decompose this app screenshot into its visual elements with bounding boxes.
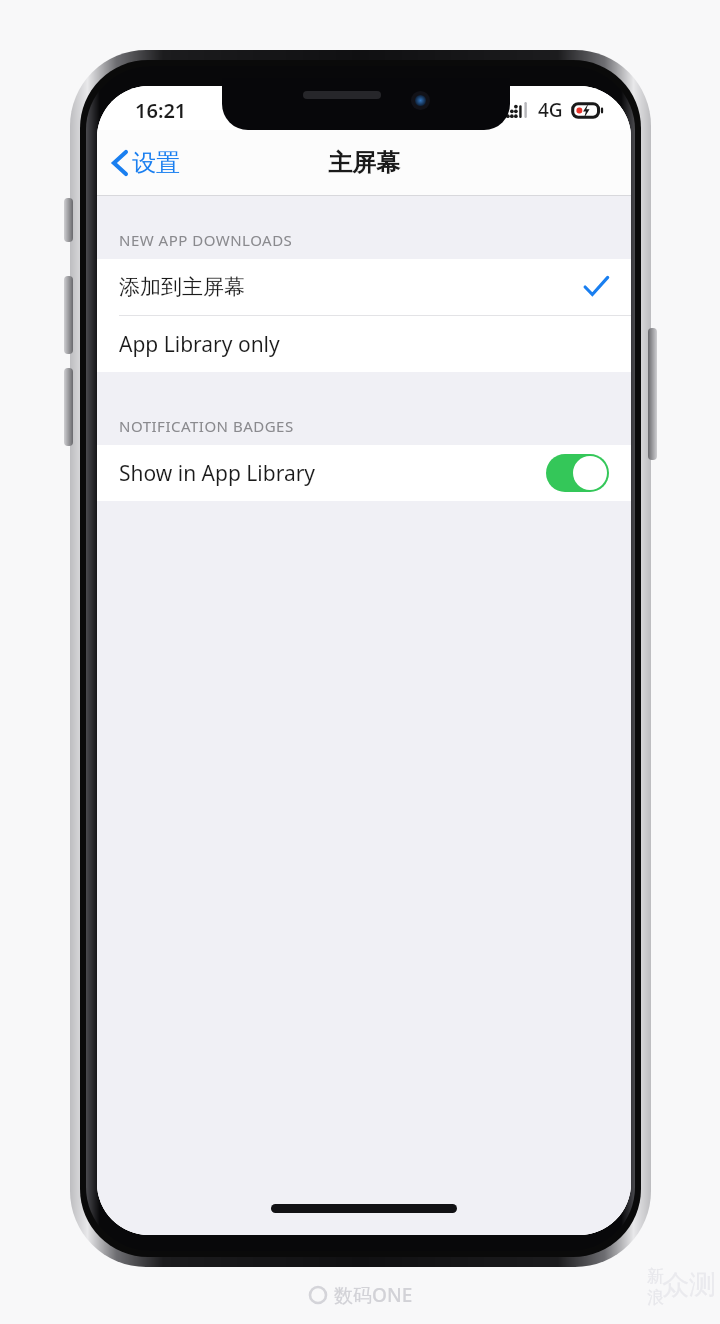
button[interactable]: Show in App Library [97, 445, 631, 501]
button[interactable]: 设置 [97, 138, 196, 188]
staticText: Show in App Library [119, 459, 316, 488]
staticText: NEW APP DOWNLOADS [119, 230, 293, 250]
staticText: 主屏幕 [328, 148, 400, 178]
staticText: 数码ONE [334, 1282, 413, 1308]
staticText: NOTIFICATION BADGES [119, 416, 294, 436]
staticText: 添加到主屏幕 [119, 274, 245, 300]
staticText: 16:21 [135, 97, 187, 124]
button[interactable]: Show in App Library, on [546, 454, 609, 492]
staticText: 新 [647, 1266, 664, 1287]
other: Selected [583, 274, 609, 300]
staticText: 4G [538, 97, 563, 123]
staticText: 浪 [647, 1287, 664, 1308]
button[interactable]: 添加到主屏幕 [97, 259, 631, 315]
staticText: App Library only [119, 330, 280, 359]
staticText: 设置 [132, 148, 180, 178]
button[interactable]: App Library only [97, 316, 631, 372]
staticText: 众测 [662, 1268, 716, 1302]
